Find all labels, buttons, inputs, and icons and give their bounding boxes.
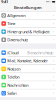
button[interactable]: Allgemein <box>0 12 56 19</box>
staticText: Mail, Kontakte, Kalender <box>7 58 48 63</box>
button[interactable]: Hintergrund & Helligkeit <box>0 28 56 35</box>
staticText: Einstellungen <box>14 5 42 10</box>
staticText: Safari <box>7 90 17 96</box>
button[interactable]: iCloud <box>0 49 56 56</box>
staticText: iCloud <box>7 50 18 55</box>
staticText: Datenschutz <box>7 37 28 42</box>
staticText: Hintergrund & Helligkeit <box>7 29 49 34</box>
button[interactable]: Safari <box>0 89 56 97</box>
staticText: Nachrichten <box>7 82 28 88</box>
staticText: Allgemein <box>7 13 25 18</box>
staticText: Notizen <box>7 66 20 71</box>
button[interactable]: Töne <box>0 20 56 27</box>
staticText: 9:41 <box>1 0 8 4</box>
button[interactable]: Mail, Kontakte, Kalender <box>0 57 56 65</box>
staticText: Telefon <box>7 74 19 80</box>
button[interactable]: Datenschutz <box>0 36 56 44</box>
staticText: Benachrichtigt <box>27 50 52 55</box>
button[interactable]: Notizen <box>0 65 56 73</box>
button[interactable]: Nachrichten <box>0 81 56 89</box>
button[interactable]: Telefon <box>0 73 56 81</box>
staticText: Töne <box>7 21 15 26</box>
